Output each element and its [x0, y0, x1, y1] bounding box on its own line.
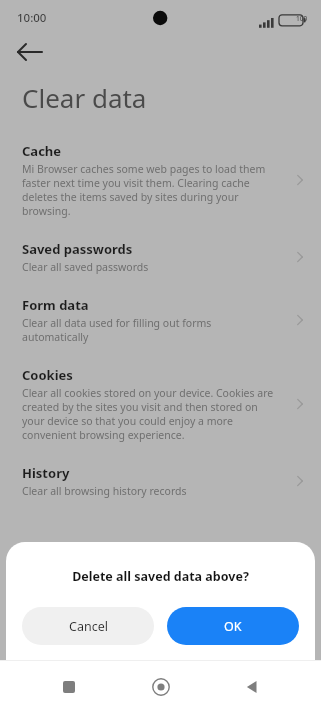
staticText: Clear all data used for filling out form…: [22, 316, 279, 344]
staticText: Form data: [22, 296, 89, 314]
staticText: Clear data: [22, 80, 147, 115]
staticText: History: [22, 464, 70, 482]
button[interactable]: OK: [167, 607, 299, 645]
button[interactable]: Form data: [0, 285, 321, 355]
staticText: Delete all saved data above?: [72, 568, 249, 585]
staticText: OK: [224, 618, 242, 635]
button[interactable]: Home: [139, 665, 183, 709]
staticText: 100: [296, 14, 308, 23]
button[interactable]: Cookies: [0, 355, 321, 453]
staticText: Cookies: [22, 366, 73, 384]
staticText: Clear all browsing history records: [22, 484, 187, 498]
staticText: Mi Browser caches some web pages to load…: [22, 162, 279, 218]
button[interactable]: Back: [230, 665, 274, 709]
staticText: Clear all saved passwords: [22, 260, 149, 274]
button[interactable]: History: [0, 453, 321, 509]
staticText: Clear all cookies stored on your device.…: [22, 386, 279, 442]
staticText: Cache: [22, 142, 62, 160]
staticText: Cancel: [69, 618, 108, 635]
button[interactable]: Recent apps: [47, 665, 91, 709]
button[interactable]: Cancel: [22, 607, 154, 645]
button[interactable]: Cache: [0, 131, 321, 229]
staticText: 10:00: [17, 10, 47, 26]
button[interactable]: Back: [10, 36, 50, 68]
staticText: Saved passwords: [22, 240, 133, 258]
button[interactable]: Saved passwords: [0, 229, 321, 285]
